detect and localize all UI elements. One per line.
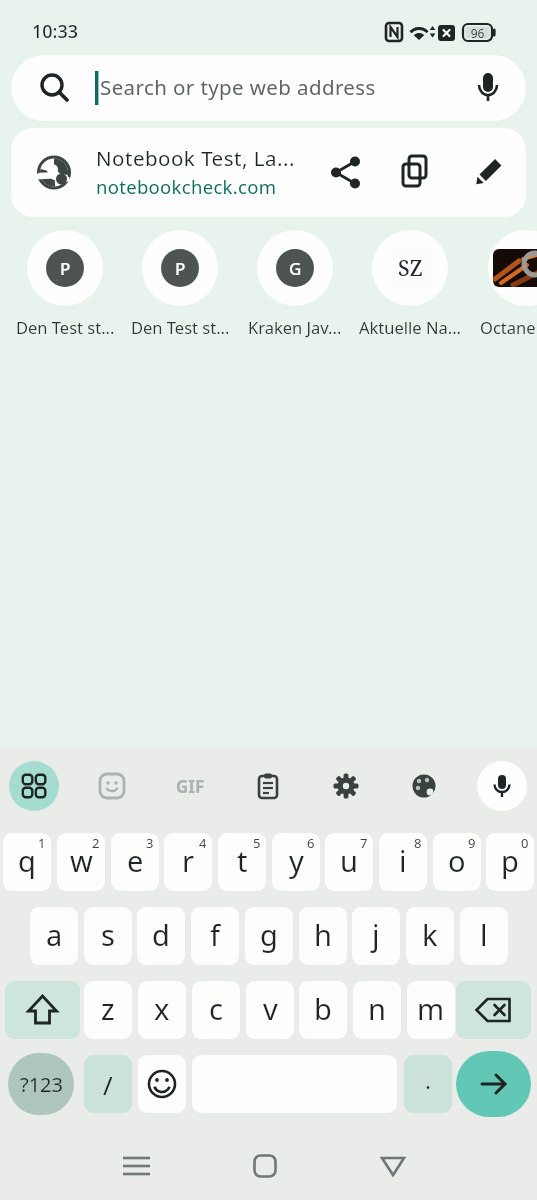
button[interactable] xyxy=(456,1051,531,1117)
button[interactable]: o xyxy=(433,833,481,891)
button[interactable]: e xyxy=(111,833,159,891)
button[interactable]: Octane 10... xyxy=(470,230,537,342)
staticText: Octane 10... xyxy=(480,316,537,338)
button[interactable] xyxy=(321,761,371,811)
staticText: k xyxy=(422,915,438,954)
staticText: 96 xyxy=(463,25,492,41)
staticText: Den Test st... xyxy=(16,316,115,338)
staticText: e xyxy=(127,841,144,880)
button[interactable]: z xyxy=(84,981,132,1039)
button[interactable]: a xyxy=(30,907,78,965)
button[interactable]: k xyxy=(406,907,454,965)
staticText: 9 xyxy=(468,834,476,852)
button[interactable]: y xyxy=(272,833,320,891)
staticText: 5 xyxy=(253,834,261,852)
staticText: q xyxy=(18,841,36,880)
staticText: c xyxy=(209,989,223,1028)
staticText: z xyxy=(101,989,115,1028)
button[interactable]: m xyxy=(407,981,455,1039)
staticText: d xyxy=(152,915,170,954)
button[interactable]: u xyxy=(325,833,373,891)
staticText: GIF xyxy=(176,775,205,798)
button[interactable]: / xyxy=(84,1055,132,1113)
button[interactable]: j xyxy=(352,907,400,965)
button[interactable] xyxy=(87,761,137,811)
button[interactable] xyxy=(477,761,527,811)
button[interactable]: t xyxy=(218,833,266,891)
staticText: w xyxy=(70,841,93,880)
button[interactable]: P xyxy=(124,230,236,342)
button[interactable] xyxy=(239,1140,291,1192)
staticText: p xyxy=(501,841,519,880)
staticText: b xyxy=(314,989,332,1028)
button[interactable]: Notebook Test, La... xyxy=(11,128,526,217)
button[interactable]: q xyxy=(3,833,51,891)
button[interactable]: i xyxy=(379,833,427,891)
staticText: Search or type web address xyxy=(100,73,376,101)
staticText: 7 xyxy=(360,834,368,852)
button[interactable]: Search or type web address xyxy=(11,55,526,121)
staticText: 4 xyxy=(199,834,207,852)
staticText: j xyxy=(372,915,380,954)
staticText: r xyxy=(182,841,194,880)
staticText: Notebook Test, La... xyxy=(96,144,295,172)
button[interactable]: l xyxy=(460,907,508,965)
staticText: h xyxy=(314,915,332,954)
staticText: 1 xyxy=(38,834,46,852)
button[interactable]: h xyxy=(299,907,347,965)
staticText: 10:33 xyxy=(32,19,79,44)
button[interactable] xyxy=(9,761,59,811)
staticText: 3 xyxy=(146,834,154,852)
staticText: g xyxy=(260,915,278,954)
button[interactable] xyxy=(456,981,531,1039)
button[interactable]: b xyxy=(299,981,347,1039)
button[interactable]: f xyxy=(191,907,239,965)
button[interactable] xyxy=(5,981,80,1039)
button[interactable]: d xyxy=(137,907,185,965)
staticText: . xyxy=(425,1065,431,1095)
staticText: Aktuelle Na... xyxy=(359,316,461,338)
staticText: 2 xyxy=(92,834,100,852)
button[interactable] xyxy=(243,761,293,811)
staticText: f xyxy=(210,915,220,954)
staticText: ?123 xyxy=(20,1071,63,1098)
button[interactable]: s xyxy=(84,907,132,965)
button[interactable]: ?123 xyxy=(8,1053,74,1115)
staticText: s xyxy=(101,915,115,954)
staticText: v xyxy=(263,989,278,1028)
button[interactable]: w xyxy=(57,833,105,891)
button[interactable] xyxy=(111,1140,163,1192)
staticText: Den Test st... xyxy=(131,316,230,338)
staticText: o xyxy=(448,841,466,880)
button[interactable]: G xyxy=(239,230,351,342)
staticText: P xyxy=(60,257,71,280)
staticText: SZ xyxy=(398,254,423,283)
button[interactable]: v xyxy=(246,981,294,1039)
button[interactable]: c xyxy=(192,981,240,1039)
staticText: x xyxy=(154,989,170,1028)
staticText: a xyxy=(46,915,63,954)
staticText: t xyxy=(237,841,248,880)
staticText: notebookcheck.com xyxy=(96,174,277,199)
button[interactable] xyxy=(367,1140,419,1192)
button[interactable]: p xyxy=(486,833,534,891)
staticText: n xyxy=(368,989,386,1028)
staticText: 0 xyxy=(521,834,529,852)
button[interactable]: x xyxy=(138,981,186,1039)
staticText: / xyxy=(103,1067,113,1102)
button[interactable] xyxy=(399,761,449,811)
staticText: G xyxy=(289,257,302,280)
staticText: Kraken Jav... xyxy=(248,316,342,338)
button[interactable]: SZ xyxy=(354,230,466,342)
staticText: 8 xyxy=(414,834,422,852)
button[interactable]: GIF xyxy=(165,761,215,811)
button[interactable]: n xyxy=(353,981,401,1039)
button[interactable]: . xyxy=(404,1055,452,1113)
button[interactable]: r xyxy=(164,833,212,891)
button[interactable] xyxy=(138,1055,186,1113)
button[interactable]: g xyxy=(245,907,293,965)
staticText: P xyxy=(175,257,186,280)
staticText: i xyxy=(399,841,407,880)
button[interactable]: P xyxy=(9,230,121,342)
